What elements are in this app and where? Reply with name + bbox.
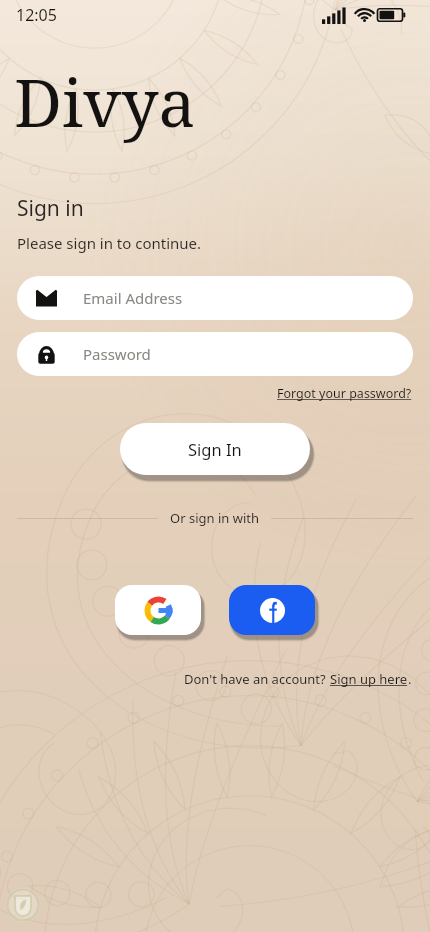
button[interactable]: Sign in with Facebook [229, 585, 315, 635]
button[interactable]: Sign up here [330, 670, 408, 688]
staticText: Please sign in to continue. [17, 233, 202, 253]
button[interactable]: Forgot your password? [277, 385, 412, 402]
staticText: Sign In [188, 438, 242, 460]
staticText: . [408, 670, 412, 688]
staticText: Or sign in with [170, 509, 259, 527]
staticText: Email Address [83, 288, 183, 308]
button[interactable]: Password [17, 332, 413, 376]
staticText: Sign in [17, 194, 84, 223]
button[interactable]: Sign in with Google [115, 585, 201, 635]
button[interactable]: Sign In [120, 423, 310, 475]
staticText: Sign up here [330, 670, 408, 688]
staticText: Divya [14, 56, 196, 146]
button[interactable]: Email Address [17, 276, 413, 320]
staticText: Don't have an account? [184, 670, 330, 688]
staticText: Password [83, 344, 151, 364]
staticText: 12:05 [16, 4, 57, 26]
